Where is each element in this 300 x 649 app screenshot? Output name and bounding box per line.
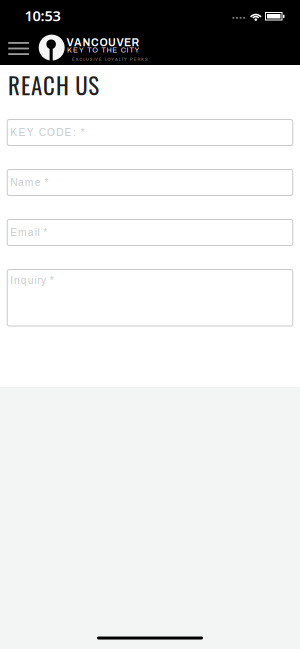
staticText: m bbox=[18, 227, 27, 238]
staticText: T bbox=[87, 46, 91, 54]
staticText: O bbox=[47, 127, 55, 138]
staticText: R bbox=[131, 37, 139, 48]
staticText: V bbox=[95, 57, 98, 62]
staticText: D bbox=[56, 127, 63, 138]
staticText: 10:53 bbox=[24, 6, 60, 25]
staticText: A bbox=[31, 68, 42, 102]
staticText: Y bbox=[79, 46, 84, 54]
staticText: K bbox=[141, 57, 144, 62]
staticText: * bbox=[50, 275, 54, 286]
staticText: L bbox=[119, 57, 121, 62]
staticText: E bbox=[10, 227, 17, 238]
staticText: C bbox=[79, 57, 82, 62]
staticText: * bbox=[43, 227, 47, 238]
staticText: H bbox=[56, 68, 69, 102]
staticText: C bbox=[39, 127, 46, 138]
staticText: E bbox=[19, 127, 26, 138]
staticText: U bbox=[75, 68, 87, 102]
staticText: S bbox=[145, 57, 148, 62]
staticText: U bbox=[86, 57, 89, 62]
staticText: i bbox=[35, 227, 37, 238]
staticText: H bbox=[106, 46, 111, 54]
staticText: I bbox=[127, 46, 129, 54]
staticText: T bbox=[130, 46, 134, 54]
staticText: q bbox=[21, 275, 27, 286]
staticText: a bbox=[28, 227, 34, 238]
staticText: a bbox=[18, 177, 24, 188]
staticText: E bbox=[72, 57, 75, 62]
staticText: L bbox=[105, 57, 107, 62]
staticText: C bbox=[121, 46, 126, 54]
staticText: E bbox=[134, 57, 137, 62]
staticText: R bbox=[138, 57, 141, 62]
staticText: E bbox=[64, 127, 71, 138]
staticText: : bbox=[73, 127, 76, 138]
staticText: L bbox=[83, 57, 85, 62]
button[interactable]: Menu bbox=[0, 0, 38, 65]
staticText: Y bbox=[111, 57, 114, 62]
button[interactable]: K bbox=[7, 119, 293, 145]
staticText: y bbox=[41, 275, 46, 286]
staticText: E bbox=[124, 37, 131, 48]
staticText: E bbox=[21, 68, 30, 102]
staticText: C bbox=[91, 37, 99, 48]
staticText: N bbox=[10, 177, 17, 188]
staticText: A bbox=[74, 37, 82, 48]
staticText: Y bbox=[27, 127, 34, 138]
staticText: K bbox=[67, 46, 72, 54]
staticText: U bbox=[108, 37, 116, 48]
staticText: * bbox=[44, 177, 48, 188]
staticText: E bbox=[99, 57, 102, 62]
staticText: S bbox=[90, 57, 93, 62]
staticText: K bbox=[10, 127, 17, 138]
staticText: V bbox=[66, 37, 73, 48]
staticText: E bbox=[112, 46, 117, 54]
staticText: Y bbox=[124, 57, 127, 62]
staticText: I bbox=[10, 275, 13, 286]
staticText: N bbox=[82, 37, 90, 48]
staticText: X bbox=[76, 57, 79, 62]
staticText: e bbox=[35, 177, 41, 188]
staticText: * bbox=[81, 127, 85, 138]
staticText: m bbox=[25, 177, 34, 188]
staticText: l bbox=[37, 227, 39, 238]
staticText: i bbox=[34, 275, 36, 286]
button[interactable]: N bbox=[7, 169, 293, 195]
staticText: T bbox=[121, 57, 123, 62]
staticText: r bbox=[37, 275, 40, 286]
staticText: S bbox=[88, 68, 99, 102]
staticText: R bbox=[8, 68, 20, 102]
staticText: u bbox=[28, 275, 34, 286]
staticText: O bbox=[92, 46, 98, 54]
staticText: C bbox=[43, 68, 55, 102]
staticText: V bbox=[116, 37, 123, 48]
staticText: P bbox=[130, 57, 133, 62]
staticText: E bbox=[73, 46, 78, 54]
staticText: n bbox=[14, 275, 20, 286]
staticText: A bbox=[115, 57, 118, 62]
staticText: O bbox=[107, 57, 110, 62]
staticText: Y bbox=[134, 46, 139, 54]
button[interactable]: I bbox=[7, 269, 293, 326]
button[interactable]: E bbox=[7, 219, 293, 245]
staticText: T bbox=[101, 46, 105, 54]
staticText: O bbox=[99, 37, 107, 48]
